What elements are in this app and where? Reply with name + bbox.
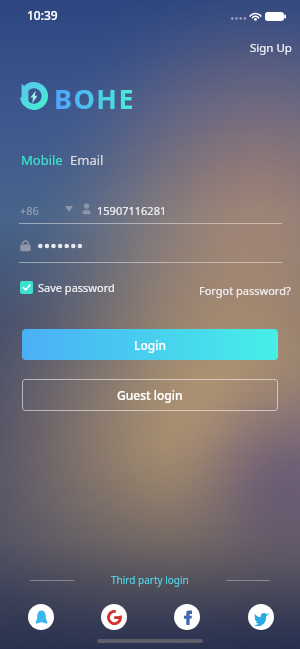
button[interactable]: +86 — [20, 203, 39, 218]
staticText: 10:39 — [27, 7, 58, 23]
button[interactable]: Google login — [101, 604, 127, 630]
button[interactable]: Guest login — [22, 379, 278, 411]
staticText: Guest login — [117, 387, 183, 403]
staticText: Third party login — [111, 573, 189, 587]
staticText: +86 — [20, 203, 39, 218]
staticText: 15907116281 — [97, 203, 167, 218]
button[interactable]: Login — [22, 329, 278, 360]
button[interactable]: Save password — [20, 280, 115, 295]
button[interactable]: Mobile — [21, 151, 63, 169]
staticText: Email — [70, 151, 104, 169]
button[interactable]: Twitter login — [248, 604, 274, 630]
staticText: Login — [134, 337, 166, 353]
button[interactable]: Email — [70, 151, 104, 169]
staticText: Save password — [38, 280, 115, 295]
button[interactable]: Facebook login — [174, 604, 200, 630]
button[interactable]: Sign Up — [244, 34, 298, 62]
staticText: BOHE — [54, 80, 136, 117]
staticText: Mobile — [21, 151, 63, 169]
staticText: Forgot password? — [199, 283, 291, 298]
button[interactable]: Forgot password? — [196, 280, 294, 301]
button[interactable]: QQ login — [28, 604, 54, 630]
staticText: Sign Up — [250, 40, 292, 56]
